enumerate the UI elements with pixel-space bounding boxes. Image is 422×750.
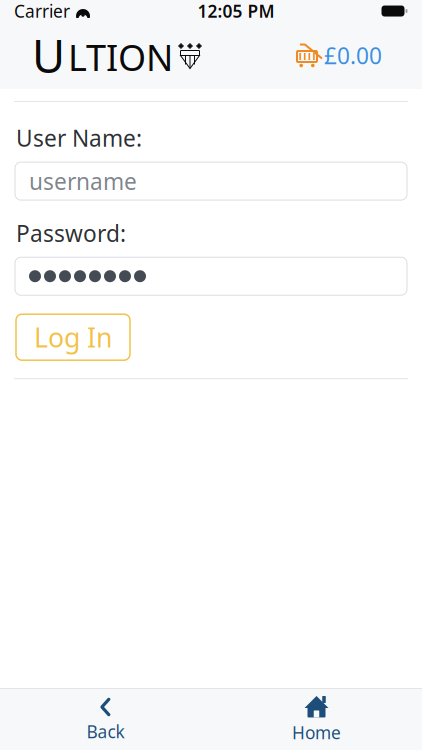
staticText: Home xyxy=(292,721,341,744)
staticText: Password: xyxy=(16,218,126,248)
staticText: Log In xyxy=(34,319,112,355)
button[interactable]: Home xyxy=(256,689,376,750)
staticText: Back xyxy=(86,720,124,743)
staticText: 12:05 PM xyxy=(197,0,274,22)
button[interactable]: Back xyxy=(45,690,165,749)
staticText: username xyxy=(29,166,137,196)
staticText: LTION xyxy=(68,33,173,81)
button[interactable]: Cart, £0.00 xyxy=(290,36,386,74)
staticText: Carrier xyxy=(14,0,70,22)
staticText: U xyxy=(32,25,65,86)
staticText: £0.00 xyxy=(324,40,382,70)
staticText: User Name: xyxy=(16,123,142,153)
button[interactable]: Log In xyxy=(16,314,130,360)
button[interactable]: Ultion home xyxy=(32,25,201,86)
